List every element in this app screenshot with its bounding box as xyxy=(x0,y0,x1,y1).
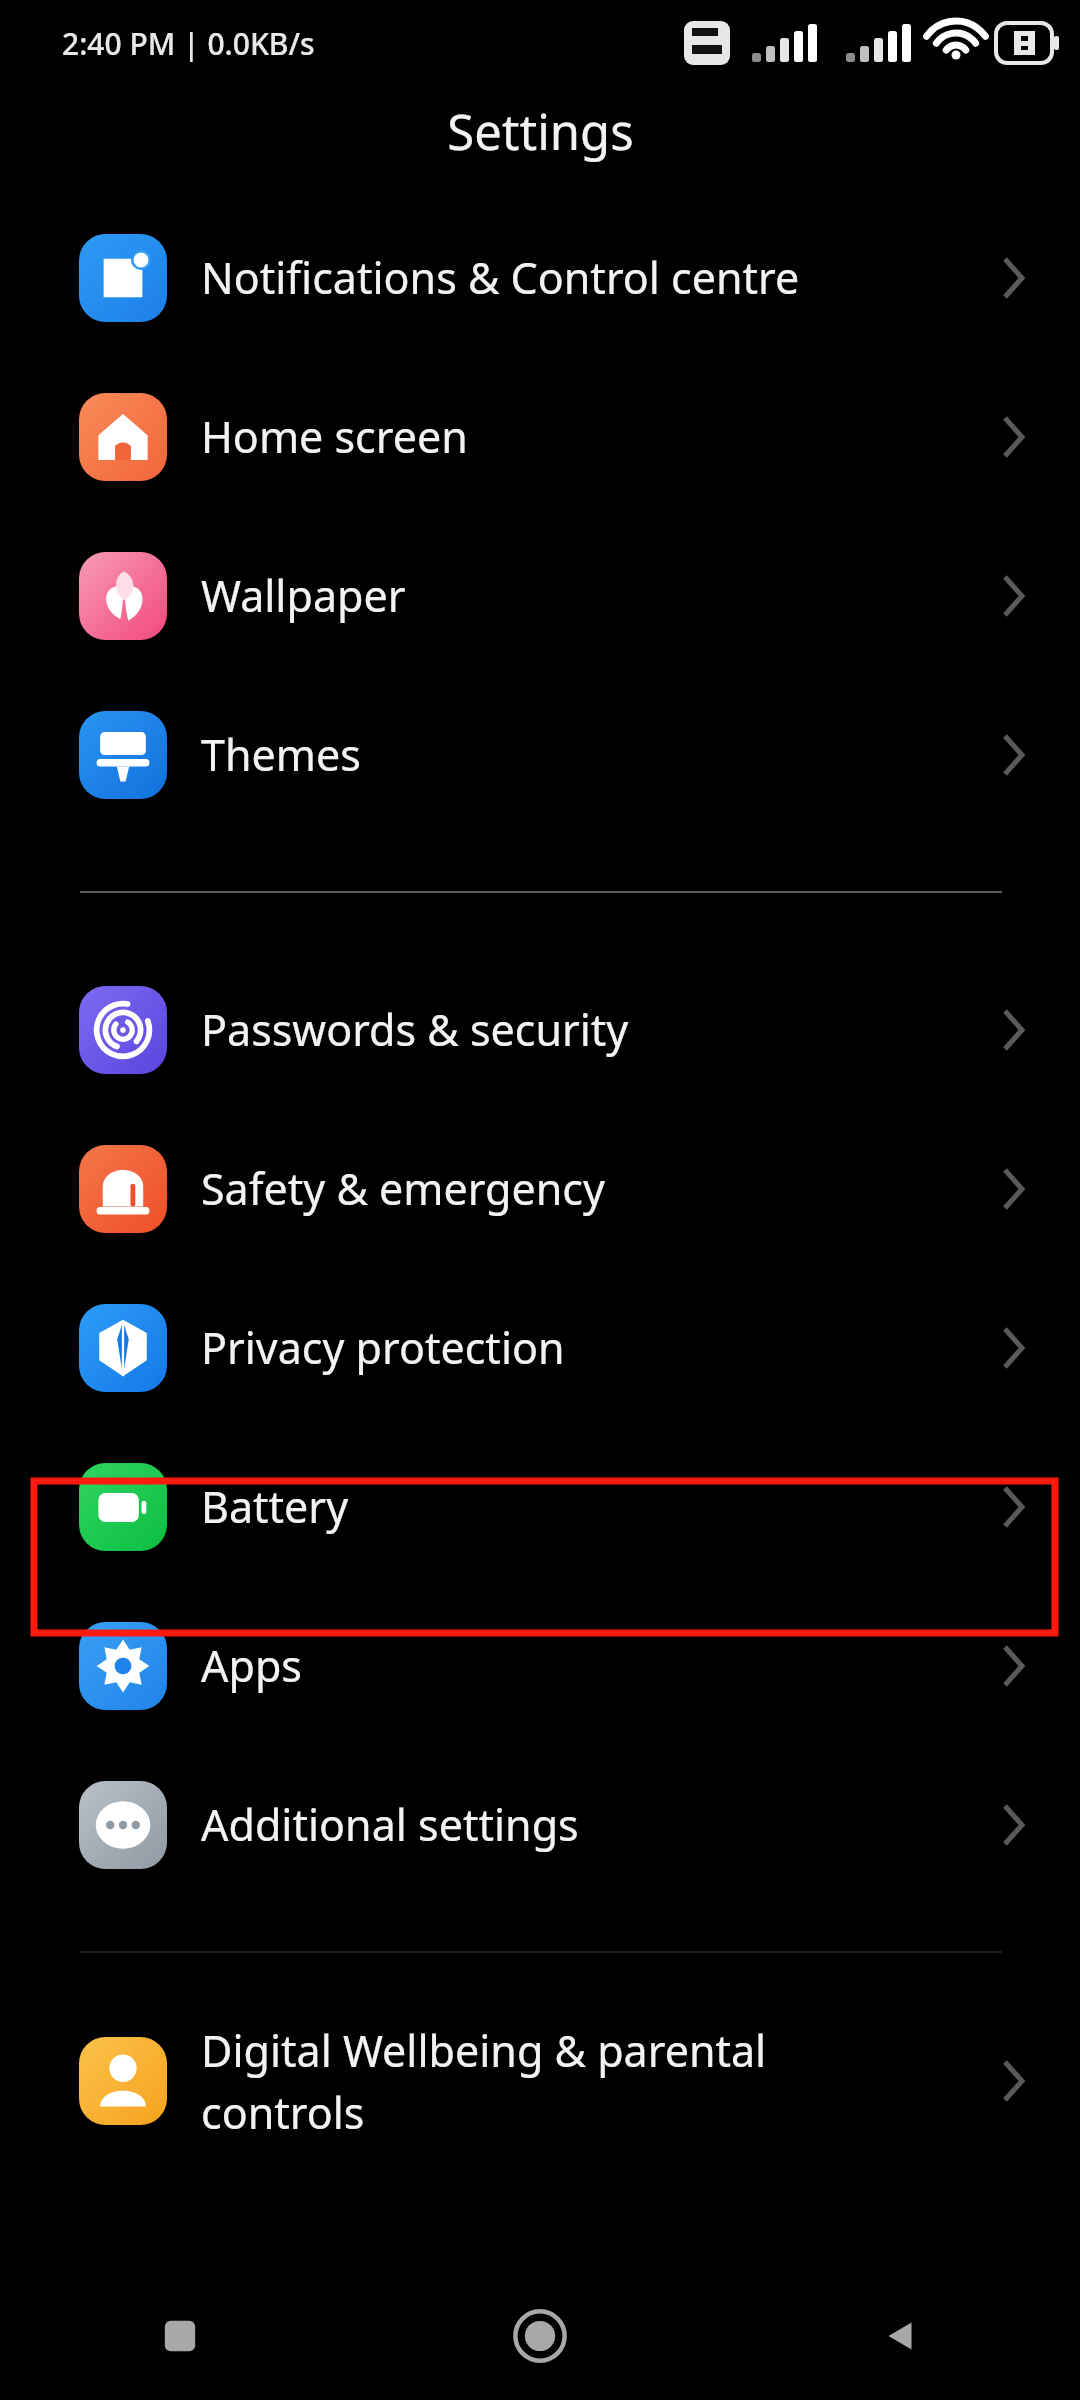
staticText: Safety & emergency xyxy=(201,1159,986,1218)
staticText: Settings xyxy=(447,98,634,165)
button[interactable]: Back xyxy=(720,2272,1080,2400)
staticText: Privacy protection xyxy=(201,1318,986,1377)
staticText: Wallpaper xyxy=(201,566,986,625)
staticText: Notifications & Control centre xyxy=(201,248,986,307)
staticText: Home screen xyxy=(201,407,986,466)
button[interactable]: Safety & emergency xyxy=(0,1109,1080,1268)
button[interactable]: Notifications & Control centre xyxy=(0,198,1080,357)
button[interactable]: Passwords & security xyxy=(0,950,1080,1109)
staticText: Apps xyxy=(201,1636,986,1695)
staticText: 2:40 PM | 0.0KB/s xyxy=(62,23,315,64)
button[interactable]: Apps xyxy=(0,1586,1080,1745)
button[interactable]: Recent apps xyxy=(0,2272,360,2400)
staticText: Passwords & security xyxy=(201,1000,986,1059)
staticText: Additional settings xyxy=(201,1795,986,1854)
button[interactable]: Battery xyxy=(0,1427,1080,1586)
button[interactable]: Additional settings xyxy=(0,1745,1080,1904)
button[interactable]: Privacy protection xyxy=(0,1268,1080,1427)
staticText: Battery xyxy=(201,1477,986,1536)
staticText: Themes xyxy=(201,725,986,784)
button[interactable]: Home screen xyxy=(0,357,1080,516)
button[interactable]: Home xyxy=(360,2272,720,2400)
staticText: Digital Wellbeing & parental controls xyxy=(201,2021,986,2141)
button[interactable]: Digital Wellbeing & parental controls xyxy=(0,1986,1080,2176)
button[interactable]: Wallpaper xyxy=(0,516,1080,675)
button[interactable]: Themes xyxy=(0,675,1080,834)
